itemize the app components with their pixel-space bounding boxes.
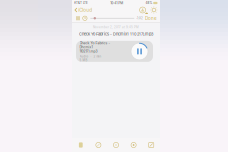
staticText: iCloud: [78, 7, 92, 13]
staticText: November 2, 2017 at 9:45 PM: [93, 25, 139, 29]
button[interactable]: Favorites: [90, 138, 107, 152]
staticText: 110217).mp3: [79, 49, 97, 53]
staticText: Done: [145, 15, 157, 21]
staticText: 48%: [145, 1, 152, 5]
staticText: 10:41 PM: [110, 1, 123, 5]
staticText: 1x: [84, 17, 86, 20]
staticText: Audio · 2 min: [79, 55, 101, 58]
staticText: Check Yo Fabrics - Dhcmix1: [79, 41, 110, 49]
button[interactable]: Details: [150, 6, 157, 14]
button[interactable]: Check Yo Fabrics - Dhcmix1: [76, 41, 153, 62]
button[interactable]: Keypad: [142, 138, 160, 152]
button[interactable]: Voicemail: [72, 138, 90, 152]
staticText: AT&T LTE: [74, 1, 88, 5]
button[interactable]: Pause: [76, 15, 80, 21]
button[interactable]: Done: [145, 14, 157, 22]
button[interactable]: iCloud: [72, 6, 92, 14]
staticText: 5 MB: [79, 58, 87, 62]
staticText: -1:02: [136, 16, 143, 20]
button[interactable]: Contact info: [139, 6, 146, 14]
button[interactable]: Contacts: [125, 138, 142, 152]
button[interactable]: Playback speed: [82, 16, 87, 21]
staticText: Check Yo Fabrics - Dhcmix1 110217).mp3: [79, 31, 153, 36]
button[interactable]: Recents: [107, 138, 125, 152]
